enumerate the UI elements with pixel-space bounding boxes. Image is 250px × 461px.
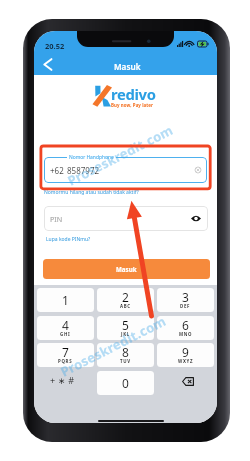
staticText: JKL (121, 331, 130, 337)
other: Clear (195, 167, 201, 173)
staticText: Proseskredit.com (64, 120, 177, 190)
staticText: 4 (62, 317, 69, 333)
staticText: ABC (120, 303, 131, 309)
button[interactable]: Show PIN (191, 215, 201, 222)
staticText: 9 (182, 344, 189, 360)
staticText: 3 (182, 289, 189, 305)
button[interactable]: Back (40, 56, 55, 73)
staticText: 6 (182, 317, 189, 333)
staticText: Masuk (114, 61, 141, 72)
button[interactable]: PIN (44, 206, 208, 231)
staticText: DEF (180, 303, 191, 309)
staticText: GHI (60, 331, 71, 337)
staticText: TUV (120, 358, 131, 364)
staticText: + ∗ # (50, 374, 75, 386)
staticText: 2 (122, 289, 129, 305)
staticText: 1 (62, 292, 69, 308)
staticText: PQRS (58, 358, 73, 364)
staticText: +62 (50, 165, 64, 176)
staticText: WXYZ (178, 358, 194, 364)
button[interactable]: 5 (97, 316, 154, 340)
staticText: Buy now, Pay later (111, 102, 154, 108)
staticText: Masuk (116, 265, 137, 273)
staticText: 5 (122, 317, 129, 333)
staticText: redivo (111, 84, 156, 104)
button[interactable]: 2 (97, 288, 154, 312)
staticText: 8 (122, 344, 129, 360)
button[interactable]: 8 (97, 343, 154, 367)
other: Backspace (182, 377, 194, 386)
staticText: 20.52 (45, 41, 65, 51)
staticText: Nomor Handphone (69, 154, 114, 161)
button[interactable]: 0 (97, 371, 154, 395)
staticText: PIN (50, 214, 63, 224)
button[interactable]: Masuk (43, 259, 210, 279)
button[interactable]: 6 (157, 316, 214, 340)
button[interactable]: 7 (37, 343, 94, 367)
staticText: 0 (122, 375, 129, 391)
button[interactable]: + ∗ # (37, 371, 94, 395)
button[interactable]: Backspace (157, 371, 214, 395)
button[interactable]: +62 (44, 157, 207, 183)
staticText: Proseskredit.com (57, 311, 170, 381)
button[interactable]: 9 (157, 343, 214, 367)
button[interactable]: 1 (37, 288, 94, 312)
staticText: MNO (179, 331, 193, 337)
button[interactable]: 4 (37, 316, 94, 340)
staticText: 8587972 (67, 165, 100, 176)
button[interactable]: 3 (157, 288, 214, 312)
button[interactable]: Lupa kode PINmu? (46, 236, 91, 243)
staticText: 7 (62, 344, 69, 360)
button[interactable]: Nomormu hilang atau sudah tidak aktif? (44, 189, 139, 196)
